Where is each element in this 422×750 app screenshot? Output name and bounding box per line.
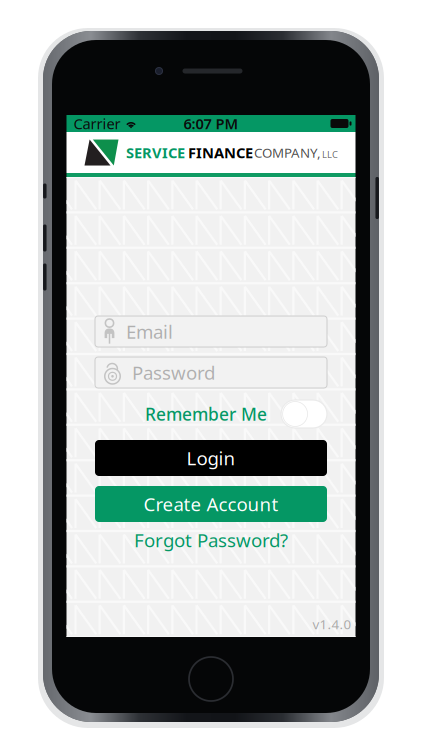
staticText: COMPANY, <box>254 144 321 161</box>
staticText: SERVICE <box>126 143 185 162</box>
staticText: Carrier <box>73 114 120 133</box>
staticText: Login <box>186 446 235 470</box>
staticText: FINANCE <box>188 143 253 162</box>
staticText: v1.4.0 <box>312 615 351 633</box>
button[interactable]: Forgot Password? <box>95 529 327 551</box>
button[interactable]: Password <box>95 357 327 388</box>
staticText: Remember Me <box>145 402 267 425</box>
button[interactable]: Login <box>95 440 327 476</box>
button[interactable]: Remember Me toggle <box>281 400 327 428</box>
staticText: Password <box>132 360 215 385</box>
staticText: Email <box>126 319 173 344</box>
staticText: LLC <box>322 148 338 161</box>
staticText: 6:07 PM <box>183 114 238 133</box>
staticText: Forgot Password? <box>134 528 288 552</box>
button[interactable]: Create Account <box>95 486 327 522</box>
staticText: Create Account <box>143 492 278 516</box>
button[interactable]: Email <box>95 316 327 347</box>
